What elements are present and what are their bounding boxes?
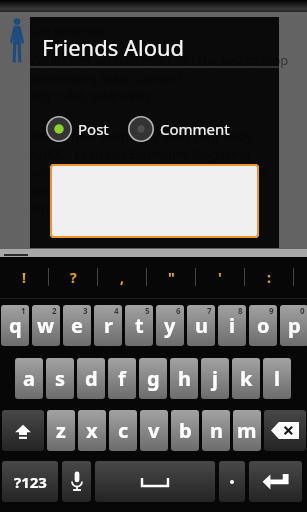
button[interactable]: Post: [45, 115, 109, 143]
button[interactable]: v: [140, 410, 168, 451]
staticText: e: [71, 312, 83, 339]
button[interactable]: f: [108, 358, 136, 399]
staticText: o: [257, 312, 270, 339]
button[interactable]: Period: [219, 461, 245, 502]
button[interactable]: r: [94, 305, 122, 346]
button[interactable]: s: [46, 358, 74, 399]
staticText: !: [22, 268, 26, 287]
staticText: ,: [120, 268, 124, 287]
staticText: f: [118, 365, 126, 392]
button[interactable]: g: [139, 358, 167, 399]
staticText: Post: [78, 119, 109, 139]
staticText: 5: [145, 305, 150, 316]
staticText: z: [56, 417, 66, 444]
staticText: ?: [70, 268, 77, 287]
button[interactable]: e: [63, 305, 91, 346]
staticText: w: [37, 312, 55, 339]
button[interactable]: ": [147, 257, 195, 297]
staticText: d: [85, 365, 98, 392]
staticText: online resources covering Probiotics-: [30, 181, 255, 199]
button[interactable]: Space: [95, 461, 215, 502]
button[interactable]: :: [245, 257, 293, 297]
staticText: ?123: [14, 472, 47, 492]
button[interactable]: [50, 164, 259, 238]
button[interactable]: w: [32, 305, 60, 346]
button[interactable]: l: [263, 358, 291, 399]
button[interactable]: q: [1, 305, 29, 346]
staticText: k: [240, 365, 253, 392]
staticText: Friends Aloud: [42, 32, 185, 62]
button[interactable]: ?123: [2, 461, 58, 502]
staticText: 9: [269, 305, 274, 316]
staticText: v: [148, 417, 160, 444]
staticText: :: [267, 268, 271, 287]
staticText: 2: [52, 305, 57, 316]
button[interactable]: i: [218, 305, 246, 346]
staticText: 4: [114, 305, 119, 316]
staticText: 7: [207, 305, 212, 316]
button[interactable]: !: [0, 257, 48, 297]
staticText: ": [168, 268, 175, 287]
staticText: u: [195, 312, 208, 339]
button[interactable]: b: [171, 410, 199, 451]
staticText: 3: [83, 305, 88, 316]
staticText: y: [164, 312, 176, 339]
staticText: x: [86, 417, 98, 444]
staticText: c: [118, 417, 129, 444]
button[interactable]: x: [78, 410, 106, 451]
staticText: t: [135, 312, 144, 339]
button[interactable]: z: [47, 410, 75, 451]
staticText: a: [23, 365, 35, 392]
button[interactable]: k: [232, 358, 260, 399]
staticText: 8: [238, 305, 243, 316]
button[interactable]: Shift: [2, 410, 44, 451]
staticText: and find reviews of the best magazine/: [30, 163, 267, 181]
staticText: b: [179, 417, 192, 444]
button[interactable]: Voice input: [62, 461, 91, 502]
button[interactable]: Enter: [249, 461, 302, 502]
staticText: p: [288, 312, 301, 339]
staticText: h: [178, 365, 191, 392]
button[interactable]: n: [202, 410, 230, 451]
button[interactable]: Backspace: [264, 410, 306, 451]
staticText: j: [212, 365, 218, 392]
button[interactable]: Comment: [127, 115, 230, 143]
button[interactable]: ': [196, 257, 244, 297]
button[interactable]: j: [201, 358, 229, 399]
button[interactable]: d: [77, 358, 105, 399]
staticText: ': [218, 268, 222, 287]
button[interactable]: ?: [49, 257, 97, 297]
staticText: n: [210, 417, 223, 444]
staticText: r: [104, 312, 113, 339]
staticText: Could certain bacteria hold the key to s…: [30, 51, 289, 69]
staticText: l: [274, 365, 280, 392]
button[interactable]: y: [156, 305, 184, 346]
button[interactable]: t: [125, 305, 153, 346]
button[interactable]: p: [280, 305, 307, 346]
button[interactable]: a: [15, 358, 43, 399]
staticText: Boost Your Immunity with your daily: [30, 127, 253, 145]
button[interactable]: m: [233, 410, 261, 451]
staticText: m: [237, 417, 257, 444]
button[interactable]: c: [109, 410, 137, 451]
button[interactable]: o: [249, 305, 277, 346]
button[interactable]: h: [170, 358, 198, 399]
staticText: 6: [176, 305, 181, 316]
staticText: q: [9, 312, 22, 339]
staticText: 0: [300, 305, 305, 316]
button[interactable]: ,: [98, 257, 146, 297]
button[interactable]: u: [187, 305, 215, 346]
staticText: Comment: [160, 119, 230, 139]
staticText: i: [229, 312, 235, 339]
staticText: plus reviews of the top Supplements: [30, 199, 252, 217]
staticText: 1: [21, 305, 26, 316]
staticText: s: [55, 365, 66, 392]
staticText: g: [147, 365, 160, 392]
